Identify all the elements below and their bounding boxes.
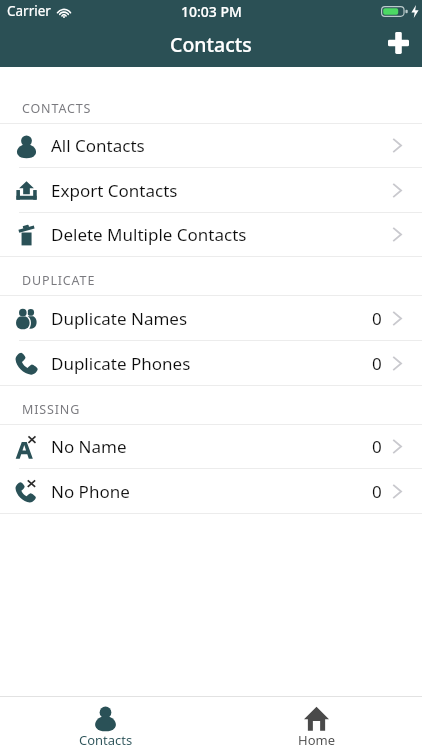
staticText: 0 <box>372 480 382 503</box>
staticText: 0 <box>372 352 382 375</box>
button[interactable]: Delete Multiple Contacts <box>0 213 422 256</box>
button[interactable]: Duplicate Names <box>0 296 422 340</box>
staticText: DUPLICATE <box>22 272 96 289</box>
button[interactable]: All Contacts <box>0 124 422 167</box>
staticText: MISSING <box>22 401 81 418</box>
staticText: 0 <box>372 435 382 458</box>
staticText: Export Contacts <box>51 179 178 202</box>
staticText: No Phone <box>51 480 130 503</box>
staticText: Carrier <box>7 2 51 20</box>
staticText: Home <box>298 731 335 749</box>
button[interactable]: Duplicate Phones <box>0 341 422 385</box>
button[interactable]: No Phone <box>0 469 422 513</box>
staticText: 0 <box>372 307 382 330</box>
button[interactable]: Export Contacts <box>0 168 422 212</box>
button[interactable]: No Name <box>0 425 422 468</box>
button[interactable]: Add contact <box>388 32 409 54</box>
button[interactable]: Contacts <box>0 697 211 750</box>
staticText: No Name <box>51 435 127 458</box>
button[interactable]: Home <box>211 697 422 750</box>
staticText: Duplicate Phones <box>51 352 191 375</box>
staticText: Delete Multiple Contacts <box>51 223 247 246</box>
staticText: Contacts <box>79 731 133 749</box>
staticText: All Contacts <box>51 134 145 157</box>
staticText: Contacts <box>170 31 252 58</box>
staticText: Duplicate Names <box>51 307 188 330</box>
staticText: 10:03 PM <box>181 2 242 21</box>
staticText: CONTACTS <box>22 100 92 117</box>
